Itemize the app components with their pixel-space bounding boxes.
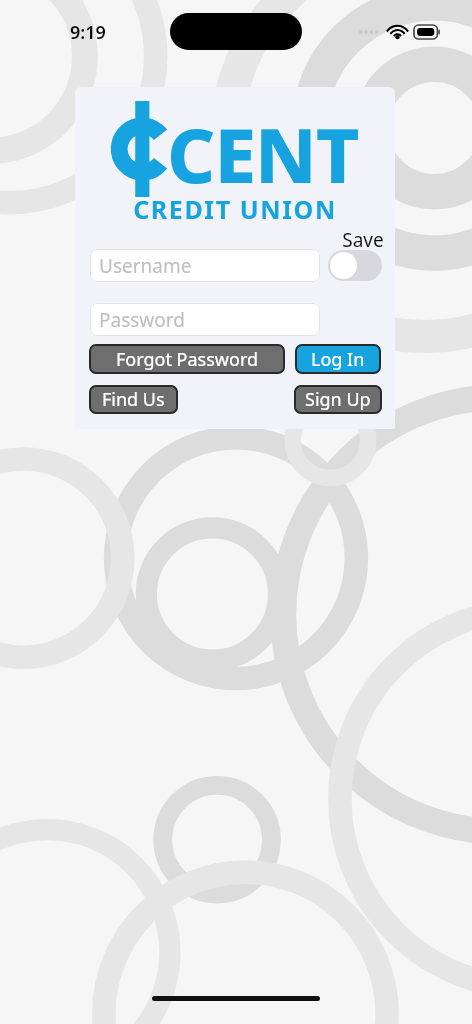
staticText: Username — [99, 253, 192, 279]
button[interactable]: Username — [90, 249, 320, 282]
staticText: 9:19 — [70, 20, 106, 45]
staticText: Forgot Password — [116, 347, 259, 372]
button[interactable]: Save credentials toggle, off — [328, 250, 382, 281]
staticText: CREDIT UNION — [75, 192, 395, 226]
staticText: CENT — [167, 103, 359, 205]
staticText: Password — [99, 307, 185, 333]
staticText: Find Us — [102, 387, 165, 412]
button[interactable]: Find Us — [89, 385, 178, 414]
staticText: Log In — [311, 347, 365, 372]
button[interactable]: Sign Up — [294, 385, 382, 414]
button[interactable]: Password — [90, 303, 320, 336]
button[interactable]: Log In — [295, 344, 381, 374]
staticText: Save — [338, 227, 388, 253]
button[interactable]: Forgot Password — [89, 344, 285, 374]
staticText: Sign Up — [305, 387, 371, 412]
